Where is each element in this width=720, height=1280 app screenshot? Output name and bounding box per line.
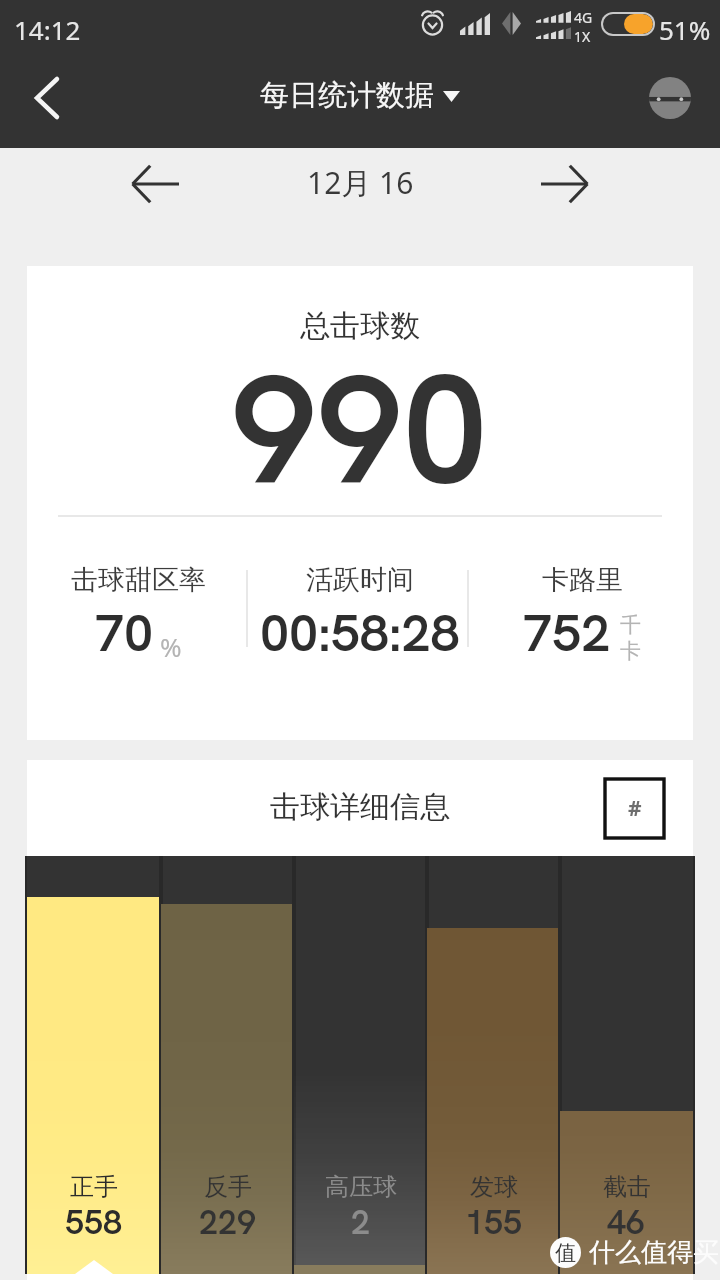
button[interactable]: Next day <box>531 150 599 218</box>
staticText: 发球 <box>470 1172 518 1202</box>
staticText: 卡 <box>620 638 641 664</box>
staticText: 4G <box>574 8 593 27</box>
staticText: 752 <box>523 599 611 667</box>
staticText: 46 <box>607 1200 646 1244</box>
staticText: 什么值得买 <box>589 1236 719 1269</box>
staticText: % <box>160 629 182 664</box>
button[interactable]: Account <box>649 77 691 119</box>
staticText: 每日统计数据 <box>260 77 434 114</box>
staticText: 51% <box>659 12 711 47</box>
staticText: 高压球 <box>325 1172 397 1202</box>
staticText: 14:12 <box>14 12 81 47</box>
button[interactable]: 高压球 <box>294 856 427 1274</box>
staticText: # <box>628 794 642 823</box>
staticText: 1X <box>574 27 591 46</box>
staticText: 千 <box>620 612 641 638</box>
staticText: 990 <box>231 330 489 529</box>
button[interactable]: 每日统计数据 <box>260 77 460 114</box>
staticText: 2 <box>351 1200 371 1244</box>
button[interactable]: Previous day <box>121 150 189 218</box>
staticText: 总击球数 <box>300 307 420 345</box>
staticText: 击球甜区率 <box>71 563 206 597</box>
button[interactable]: Chart type <box>605 779 664 838</box>
button[interactable]: 正手 <box>27 856 161 1274</box>
staticText: 155 <box>465 1200 523 1244</box>
button[interactable]: 发球 <box>427 856 560 1274</box>
staticText: 卡路里 <box>542 563 623 597</box>
staticText: 截击 <box>603 1172 651 1202</box>
button[interactable]: Back <box>12 63 82 133</box>
staticText: 70 <box>95 599 154 667</box>
staticText: 正手 <box>70 1172 118 1202</box>
staticText: 活跃时间 <box>306 563 414 597</box>
staticText: 229 <box>199 1200 257 1244</box>
staticText: 值 <box>555 1240 576 1266</box>
staticText: 558 <box>65 1200 123 1244</box>
staticText: 12月 16 <box>307 162 414 203</box>
staticText: 击球详细信息 <box>270 788 450 826</box>
button[interactable]: 反手 <box>161 856 294 1274</box>
staticText: 反手 <box>204 1172 252 1202</box>
staticText: 00:58:28 <box>260 599 460 667</box>
button[interactable]: 截击 <box>560 856 693 1274</box>
